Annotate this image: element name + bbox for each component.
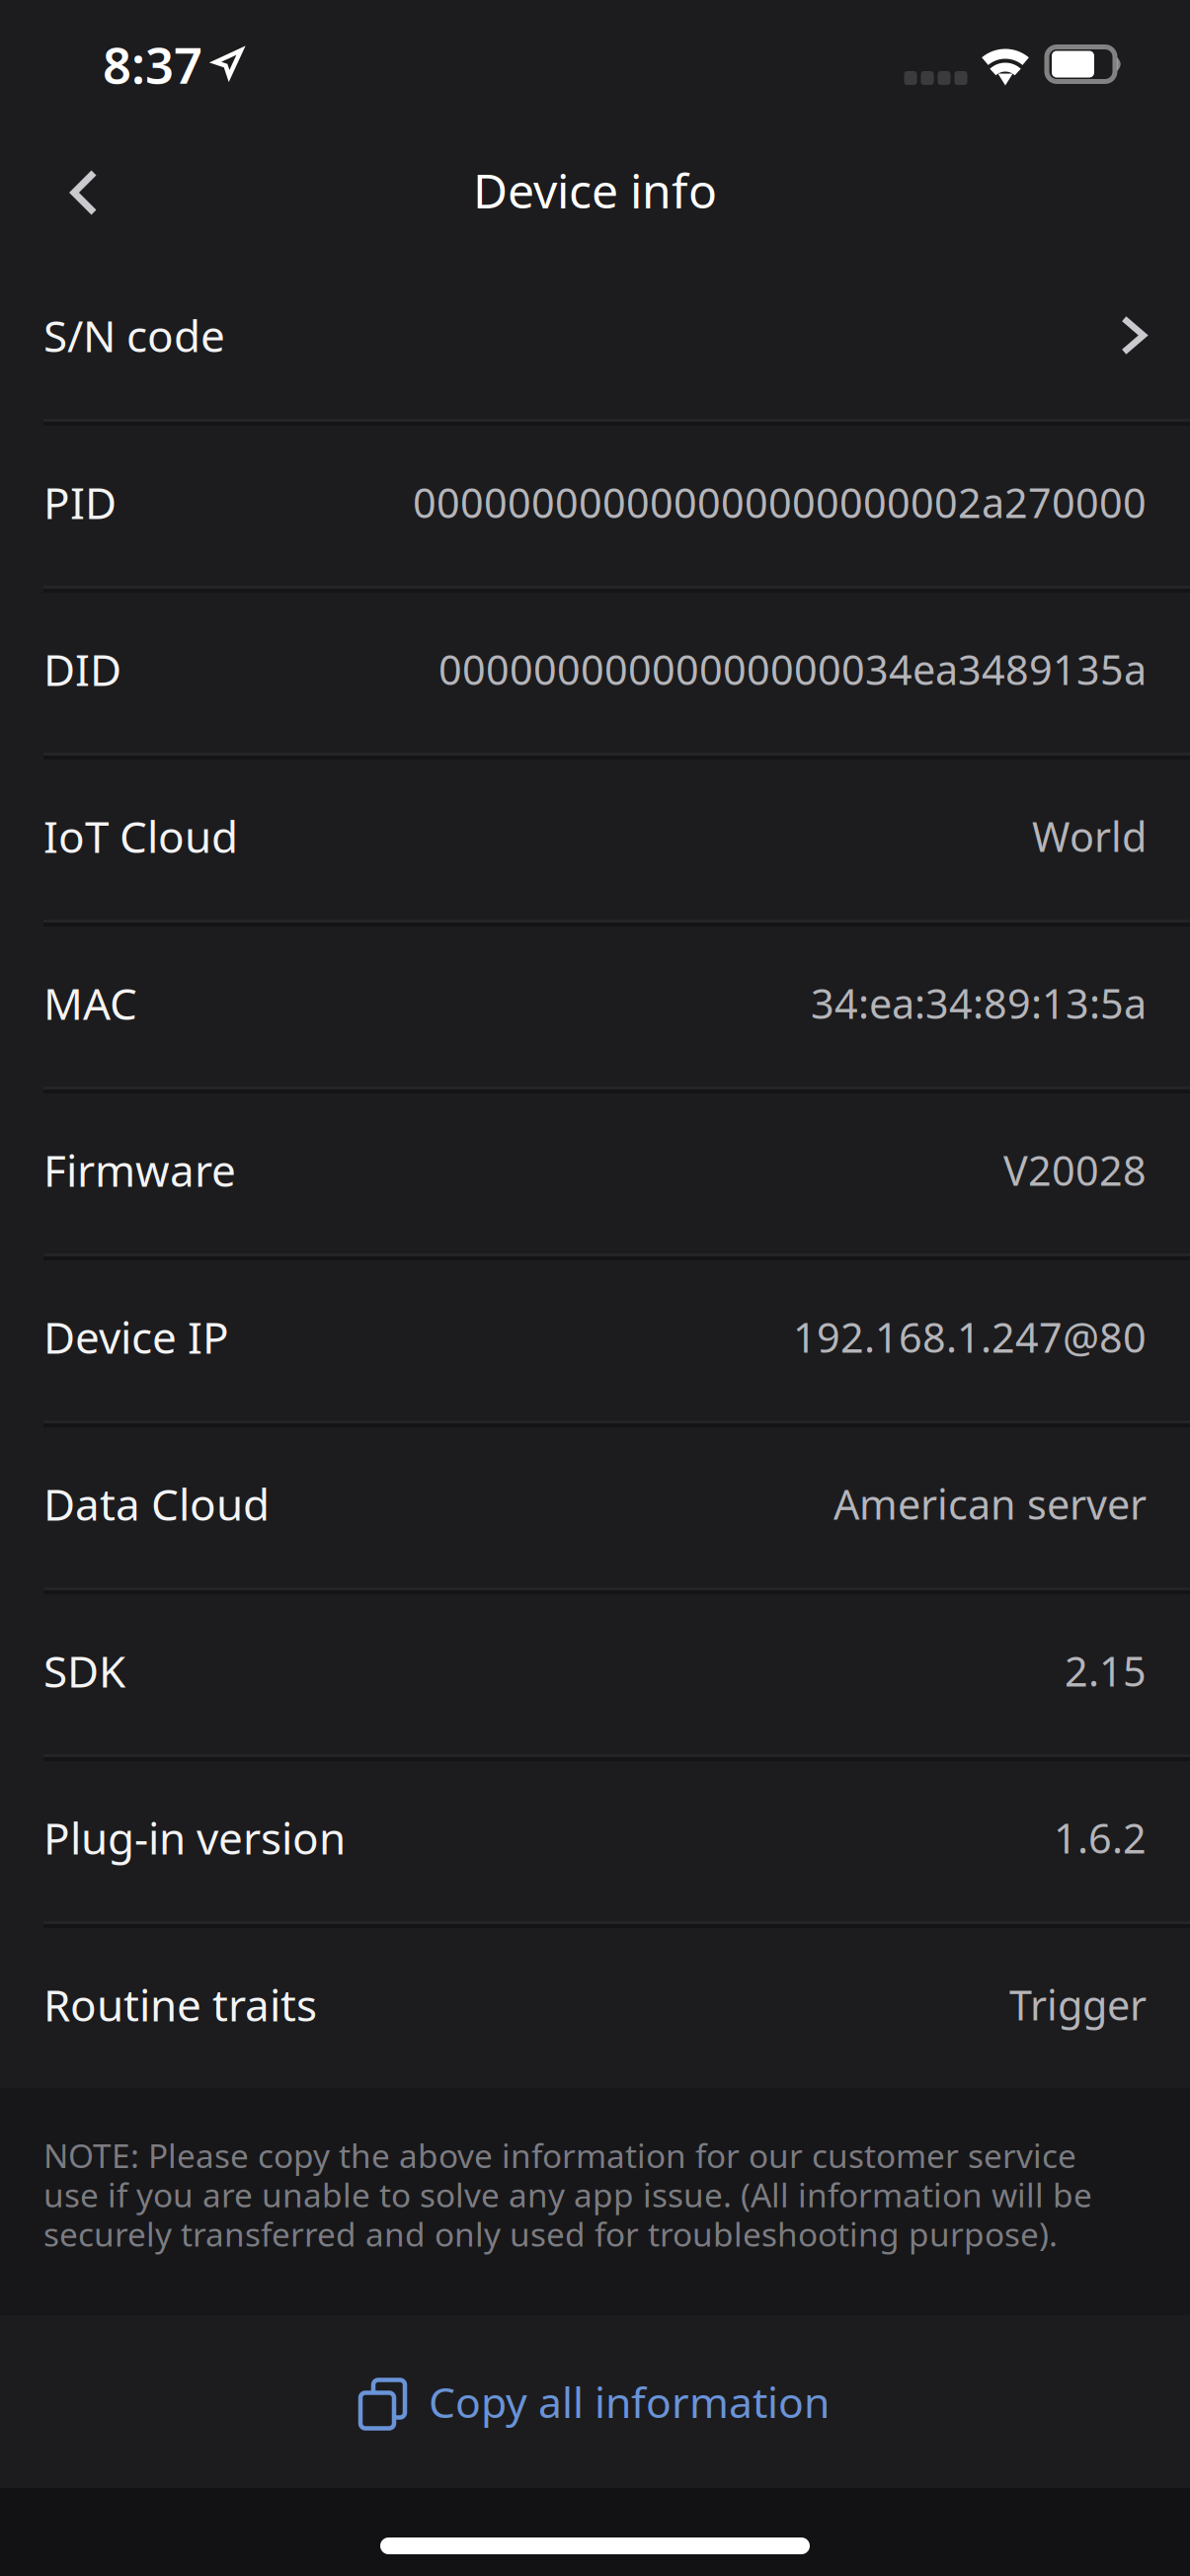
button[interactable]: Back — [30, 136, 138, 244]
button[interactable]: Routine traits — [0, 1921, 1190, 2088]
staticText: Device info — [473, 159, 717, 222]
button[interactable]: Plug-in version — [0, 1754, 1190, 1921]
button[interactable]: Copy all information — [0, 2315, 1190, 2488]
staticText: 8:37 — [103, 31, 202, 97]
button[interactable]: MAC — [0, 920, 1190, 1087]
staticText: 00000000000000000034ea3489135a — [438, 642, 1147, 696]
staticText: MAC — [43, 974, 137, 1032]
staticText: World — [1032, 809, 1147, 863]
staticText: American server — [833, 1477, 1147, 1531]
staticText: V20028 — [1003, 1143, 1147, 1197]
button[interactable]: Firmware — [0, 1087, 1190, 1253]
staticText: S/N code — [43, 306, 225, 364]
staticText: SDK — [43, 1642, 125, 1700]
staticText: Device IP — [43, 1308, 229, 1366]
staticText: 000000000000000000000002a270000 — [413, 475, 1147, 529]
staticText: Firmware — [43, 1141, 236, 1199]
staticText: PID — [43, 473, 117, 531]
staticText: 2.15 — [1065, 1644, 1147, 1698]
staticText: Plug-in version — [43, 1809, 346, 1867]
button[interactable]: Device IP — [0, 1253, 1190, 1420]
staticText: NOTE: Please copy the above information … — [43, 2133, 1092, 2256]
staticText: 34:ea:34:89:13:5a — [811, 976, 1147, 1030]
button[interactable]: SDK — [0, 1587, 1190, 1754]
staticText: Copy all information — [429, 2374, 830, 2430]
staticText: Trigger — [1009, 1978, 1147, 2032]
staticText: DID — [43, 640, 121, 698]
button[interactable]: DID — [0, 586, 1190, 753]
button[interactable]: IoT Cloud — [0, 753, 1190, 920]
button[interactable]: S/N code — [0, 252, 1190, 419]
button[interactable]: PID — [0, 419, 1190, 586]
staticText: 192.168.1.247@80 — [793, 1310, 1147, 1364]
staticText: Data Cloud — [43, 1475, 270, 1533]
button[interactable]: Data Cloud — [0, 1420, 1190, 1587]
staticText: IoT Cloud — [43, 807, 238, 865]
staticText: 1.6.2 — [1054, 1811, 1147, 1865]
staticText: Routine traits — [43, 1976, 317, 2033]
